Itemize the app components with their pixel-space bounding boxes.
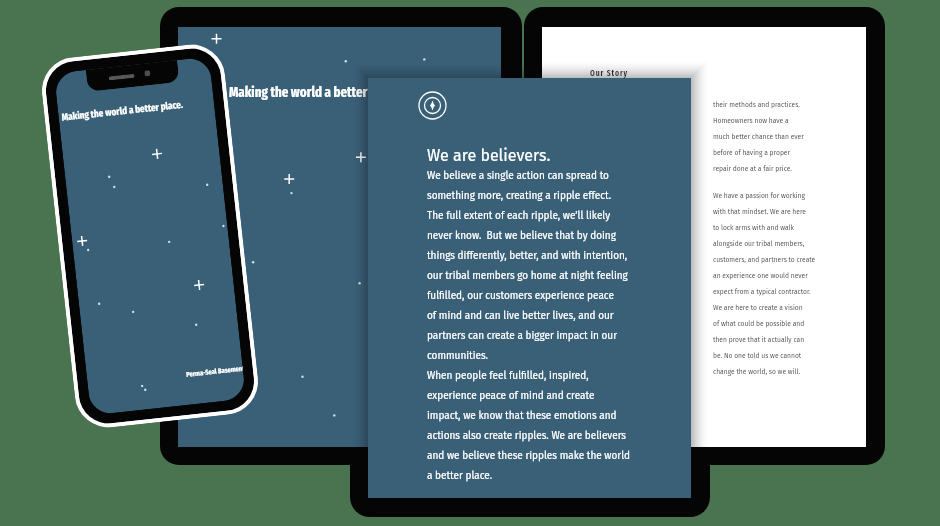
button[interactable]: Making the world a better place. bbox=[160, 7, 522, 465]
staticText: communities. bbox=[427, 350, 489, 370]
button[interactable]: Making the world a better place. bbox=[38, 41, 262, 431]
staticText: and we believe these ripples make the wo… bbox=[427, 450, 631, 470]
staticText: change the world, so we will. bbox=[713, 368, 801, 384]
staticText: something more, creating a ripple effect… bbox=[427, 190, 612, 210]
staticText: Our Story bbox=[590, 68, 629, 78]
other: Logo bbox=[418, 91, 447, 120]
staticText: repair done at a fair price. bbox=[713, 165, 792, 181]
staticText: our tribal members go home at night feel… bbox=[427, 270, 628, 290]
staticText: of mind and can live better lives, and o… bbox=[427, 310, 614, 330]
staticText: their methods and practices. bbox=[713, 101, 800, 117]
staticText: Making the world a better place. bbox=[61, 99, 184, 124]
staticText: alongside our tribal members, bbox=[713, 240, 805, 256]
staticText: When people feel fulfilled, inspired, bbox=[427, 370, 589, 390]
staticText: before of having a proper bbox=[713, 149, 791, 165]
staticText: impact, we know that these emotions and bbox=[427, 410, 617, 430]
staticText: expect from a typical contractor. bbox=[713, 288, 811, 304]
staticText: to lock arms with and walk bbox=[713, 224, 794, 240]
staticText: actions also create ripples. We are beli… bbox=[427, 430, 627, 450]
staticText: then prove that it actually can bbox=[713, 336, 805, 352]
staticText: fulfilled, our customers experience peac… bbox=[427, 290, 614, 310]
staticText: much better chance than ever bbox=[713, 133, 804, 149]
staticText: Homeowners now have a bbox=[713, 117, 789, 133]
staticText: be. No one told us we cannot bbox=[713, 352, 802, 368]
button[interactable]: Our Story bbox=[524, 7, 885, 465]
staticText: never know. But we believe that by doing bbox=[427, 230, 616, 250]
staticText: with that mindset. We are here bbox=[713, 208, 806, 224]
staticText: We are here to create a vision bbox=[713, 304, 803, 320]
staticText: customers, and partners to create bbox=[713, 256, 816, 272]
staticText: The full extent of each ripple, we’ll li… bbox=[427, 210, 611, 230]
staticText: partners can create a bigger impact in o… bbox=[427, 330, 618, 350]
button[interactable]: Logo bbox=[368, 78, 691, 498]
staticText: things differently, better, and with int… bbox=[427, 250, 628, 270]
staticText: an experience one would never bbox=[713, 272, 808, 288]
staticText: We believe a single action can spread to bbox=[427, 170, 609, 190]
staticText: of what could be possible and bbox=[713, 320, 805, 336]
staticText: a better place. bbox=[427, 470, 493, 490]
staticText: Making the world a better place. bbox=[229, 84, 402, 101]
staticText: We have a passion for working bbox=[713, 192, 805, 208]
staticText: experience peace of mind and create bbox=[427, 390, 595, 410]
staticText: We are believers. bbox=[427, 146, 551, 170]
staticText: Perma-Seal Basement Systems bbox=[186, 364, 243, 378]
